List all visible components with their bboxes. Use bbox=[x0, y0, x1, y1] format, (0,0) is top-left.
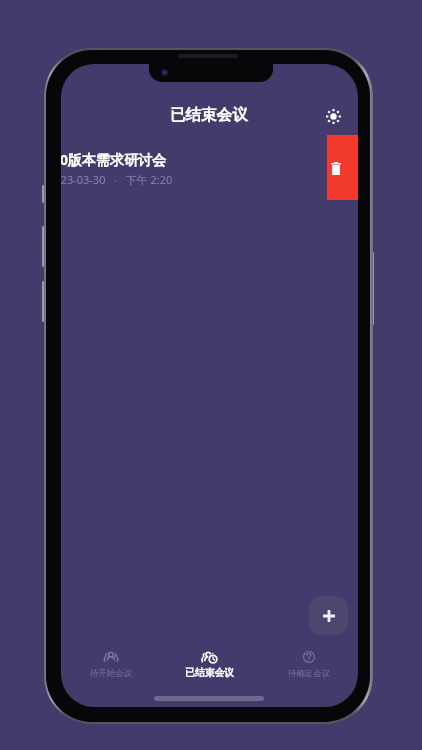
button[interactable]: 待确定会议 bbox=[259, 645, 358, 691]
staticText: 3.0版本需求研讨会 bbox=[61, 150, 166, 169]
button[interactable]: Add meeting bbox=[309, 596, 348, 635]
staticText: 2023-03-30 · 下午 2:20 bbox=[61, 172, 173, 187]
staticText: 待确定会议 bbox=[288, 668, 330, 679]
button[interactable]: Toggle light mode bbox=[317, 100, 349, 132]
button[interactable]: 已结束会议 bbox=[160, 645, 259, 691]
staticText: 待开始会议 bbox=[90, 668, 132, 679]
button[interactable]: Delete bbox=[327, 135, 358, 200]
button[interactable]: 3.0版本需求研讨会 bbox=[61, 135, 358, 200]
button[interactable]: 待开始会议 bbox=[61, 645, 160, 691]
staticText: 已结束会议 bbox=[170, 105, 248, 125]
staticText: 已结束会议 bbox=[185, 667, 234, 679]
